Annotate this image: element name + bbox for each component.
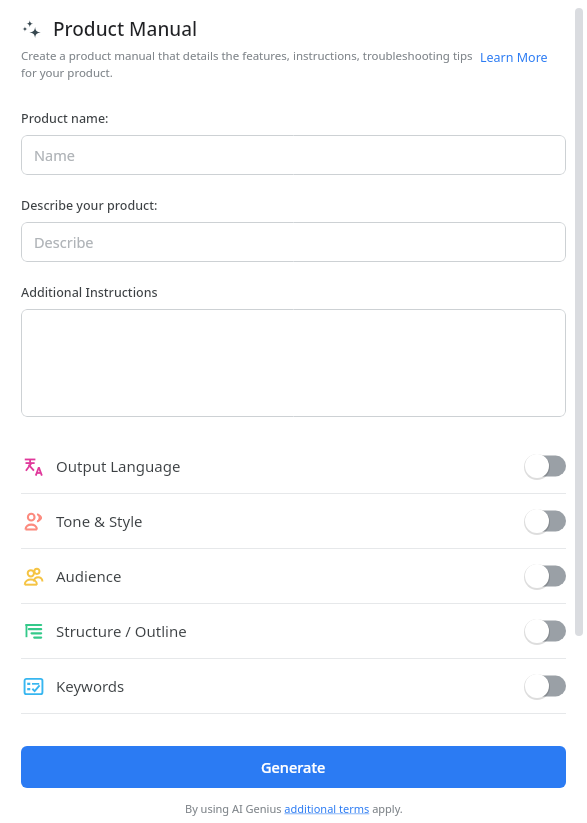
- staticText: Learn More: [480, 49, 548, 66]
- button[interactable]: Toggle option: [524, 673, 566, 699]
- button[interactable]: Audience: [21, 549, 566, 603]
- staticText: Describe your product:: [21, 197, 158, 214]
- staticText: Name: [34, 145, 75, 165]
- button[interactable]: Learn More: [476, 48, 548, 66]
- button[interactable]: Tone & Style: [21, 494, 566, 548]
- button[interactable]: Output Language: [21, 439, 566, 493]
- button[interactable]: Generate: [21, 746, 566, 788]
- staticText: Audience: [56, 566, 122, 586]
- staticText: Generate: [261, 757, 326, 777]
- button[interactable]: Keywords: [21, 659, 566, 713]
- staticText: Structure / Outline: [56, 621, 187, 641]
- button[interactable]: Toggle option: [524, 618, 566, 644]
- button[interactable]: Toggle option: [524, 563, 566, 589]
- button[interactable]: Toggle option: [524, 508, 566, 534]
- button[interactable]: Structure / Outline: [21, 604, 566, 658]
- staticText: Product name:: [21, 110, 109, 127]
- staticText: Tone & Style: [56, 511, 143, 531]
- staticText: Additional Instructions: [21, 284, 158, 301]
- button[interactable]: Toggle option: [524, 453, 566, 479]
- button[interactable]: Name: [21, 135, 566, 175]
- staticText: Output Language: [56, 456, 181, 476]
- staticText: Product Manual: [53, 16, 198, 42]
- button[interactable]: [21, 309, 566, 417]
- staticText: Keywords: [56, 676, 125, 696]
- staticText: By using AI Genius additional terms appl…: [185, 801, 403, 816]
- button[interactable]: Describe: [21, 222, 566, 262]
- staticText: Create a product manual that details the…: [21, 48, 476, 80]
- staticText: Describe: [34, 232, 94, 252]
